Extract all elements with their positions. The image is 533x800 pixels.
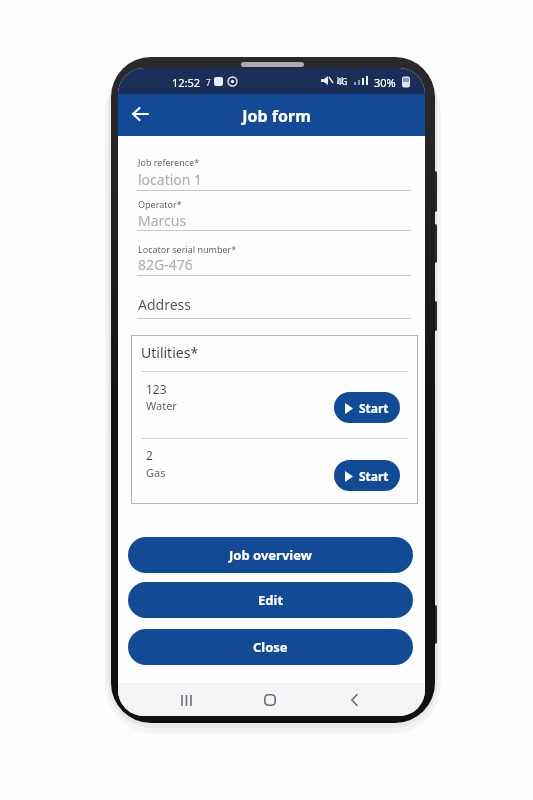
- staticText: Job overview: [229, 546, 312, 564]
- button[interactable]: [124, 98, 156, 130]
- staticText: Locator serial number*: [138, 243, 237, 255]
- staticText: Marcus: [138, 211, 187, 230]
- staticText: Utilities*: [141, 343, 199, 362]
- staticText: Operator*: [138, 198, 182, 210]
- staticText: 12:52: [172, 75, 201, 90]
- button[interactable]: Edit: [128, 582, 413, 618]
- button[interactable]: [170, 685, 202, 715]
- staticText: location 1: [138, 170, 203, 189]
- staticText: Start: [359, 400, 389, 416]
- staticText: 82G-476: [138, 255, 193, 274]
- button[interactable]: Job overview: [128, 537, 413, 573]
- staticText: Start: [359, 468, 389, 484]
- staticText: 4G: [337, 76, 348, 87]
- staticText: 30%: [374, 75, 396, 90]
- staticText: Edit: [258, 591, 284, 609]
- button[interactable]: Close: [128, 629, 413, 665]
- button[interactable]: [254, 685, 286, 715]
- staticText: Close: [253, 638, 288, 656]
- button[interactable]: Start: [334, 392, 400, 423]
- staticText: Gas: [146, 465, 166, 480]
- staticText: 7: [206, 77, 211, 88]
- staticText: 2: [146, 447, 153, 463]
- staticText: Water: [146, 398, 177, 413]
- staticText: Job reference*: [138, 156, 200, 168]
- staticText: 123: [146, 381, 167, 397]
- button[interactable]: Start: [334, 460, 400, 491]
- staticText: Job form: [123, 105, 425, 127]
- staticText: Address: [138, 295, 191, 314]
- button[interactable]: [338, 685, 370, 715]
